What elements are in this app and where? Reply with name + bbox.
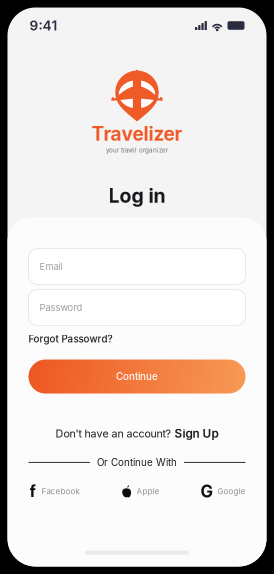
staticText: Email	[39, 261, 62, 272]
staticText: Password	[39, 302, 82, 313]
button[interactable]: G	[201, 484, 245, 498]
staticText: 9:41	[29, 17, 57, 34]
button[interactable]: f	[28, 484, 79, 498]
staticText: Facebook	[41, 486, 79, 496]
staticText: Sign Up	[174, 426, 218, 441]
button[interactable]: Forgot Passowrd?	[28, 332, 112, 345]
staticText: Forgot Passowrd?	[28, 333, 112, 345]
staticText: Or Continue With	[97, 456, 177, 468]
staticText: Apple	[136, 486, 159, 496]
button[interactable]: Apple	[121, 484, 159, 498]
staticText: Continue	[116, 371, 158, 382]
staticText: Travelizer	[91, 122, 182, 145]
staticText: your travel organizer	[106, 146, 168, 154]
button[interactable]: Don't have an account?	[55, 427, 218, 439]
staticText: Don't have an account?	[55, 427, 170, 440]
staticText: f	[29, 482, 35, 501]
staticText: Log in	[108, 184, 165, 208]
staticText: Google	[217, 486, 245, 496]
staticText: G	[200, 481, 213, 501]
button[interactable]: Continue	[28, 359, 245, 393]
